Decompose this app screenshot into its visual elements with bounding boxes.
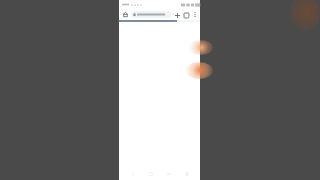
button[interactable]: Home <box>121 10 130 19</box>
button[interactable] <box>131 11 171 18</box>
button[interactable]: Delete <box>178 168 196 180</box>
button[interactable]: New tab <box>173 11 181 19</box>
button[interactable]: More options <box>191 11 198 18</box>
button[interactable]: Switch tabs <box>182 11 190 19</box>
